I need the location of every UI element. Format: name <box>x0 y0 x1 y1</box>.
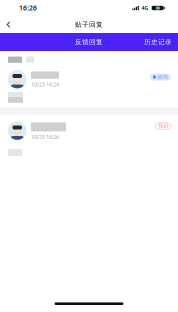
staticText: 4G <box>141 4 148 12</box>
staticText: 16:26 <box>19 4 37 12</box>
staticText: 咨询 <box>158 74 168 80</box>
button[interactable]: 10/25 16:24 <box>0 51 178 107</box>
staticText: 80 <box>156 5 160 11</box>
button[interactable]: 历史记录 <box>143 33 173 51</box>
staticText: 贴子回复 <box>75 20 103 29</box>
staticText: 历史记录 <box>144 38 172 46</box>
staticText: 投诉 <box>158 123 168 129</box>
button[interactable]: 反馈回复 <box>74 33 104 51</box>
staticText: 反馈回复 <box>75 38 103 46</box>
button[interactable]: 10/25 16:26 <box>0 115 178 162</box>
button[interactable]: 返回 <box>0 16 17 33</box>
staticText: 10/25 16:26 <box>31 133 59 140</box>
staticText: 10/25 16:24 <box>31 81 59 88</box>
